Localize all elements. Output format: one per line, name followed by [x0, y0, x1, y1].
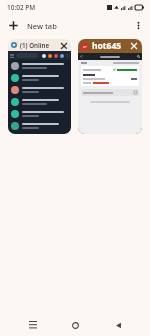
button[interactable]: [8, 60, 71, 72]
button[interactable]: More options: [129, 16, 147, 34]
button[interactable]: Close tab: [129, 41, 139, 51]
button[interactable]: [8, 96, 71, 108]
button[interactable]: [8, 72, 71, 84]
button[interactable]: [8, 120, 71, 132]
button[interactable]: Home: [65, 315, 85, 335]
button[interactable]: Close tab: [59, 41, 68, 50]
button[interactable]: Recent apps: [23, 315, 43, 335]
staticText: (1) Online: [20, 41, 59, 49]
button[interactable]: hot645: [78, 39, 142, 134]
staticText: hot645: [92, 40, 129, 52]
button[interactable]: New tab: [5, 18, 60, 33]
button[interactable]: [8, 84, 71, 96]
button[interactable]: (1) Online: [8, 39, 71, 134]
button[interactable]: Back: [108, 315, 128, 335]
staticText: 10:02 PM: [7, 3, 36, 12]
staticText: New tab: [27, 21, 57, 31]
button[interactable]: [8, 108, 71, 120]
